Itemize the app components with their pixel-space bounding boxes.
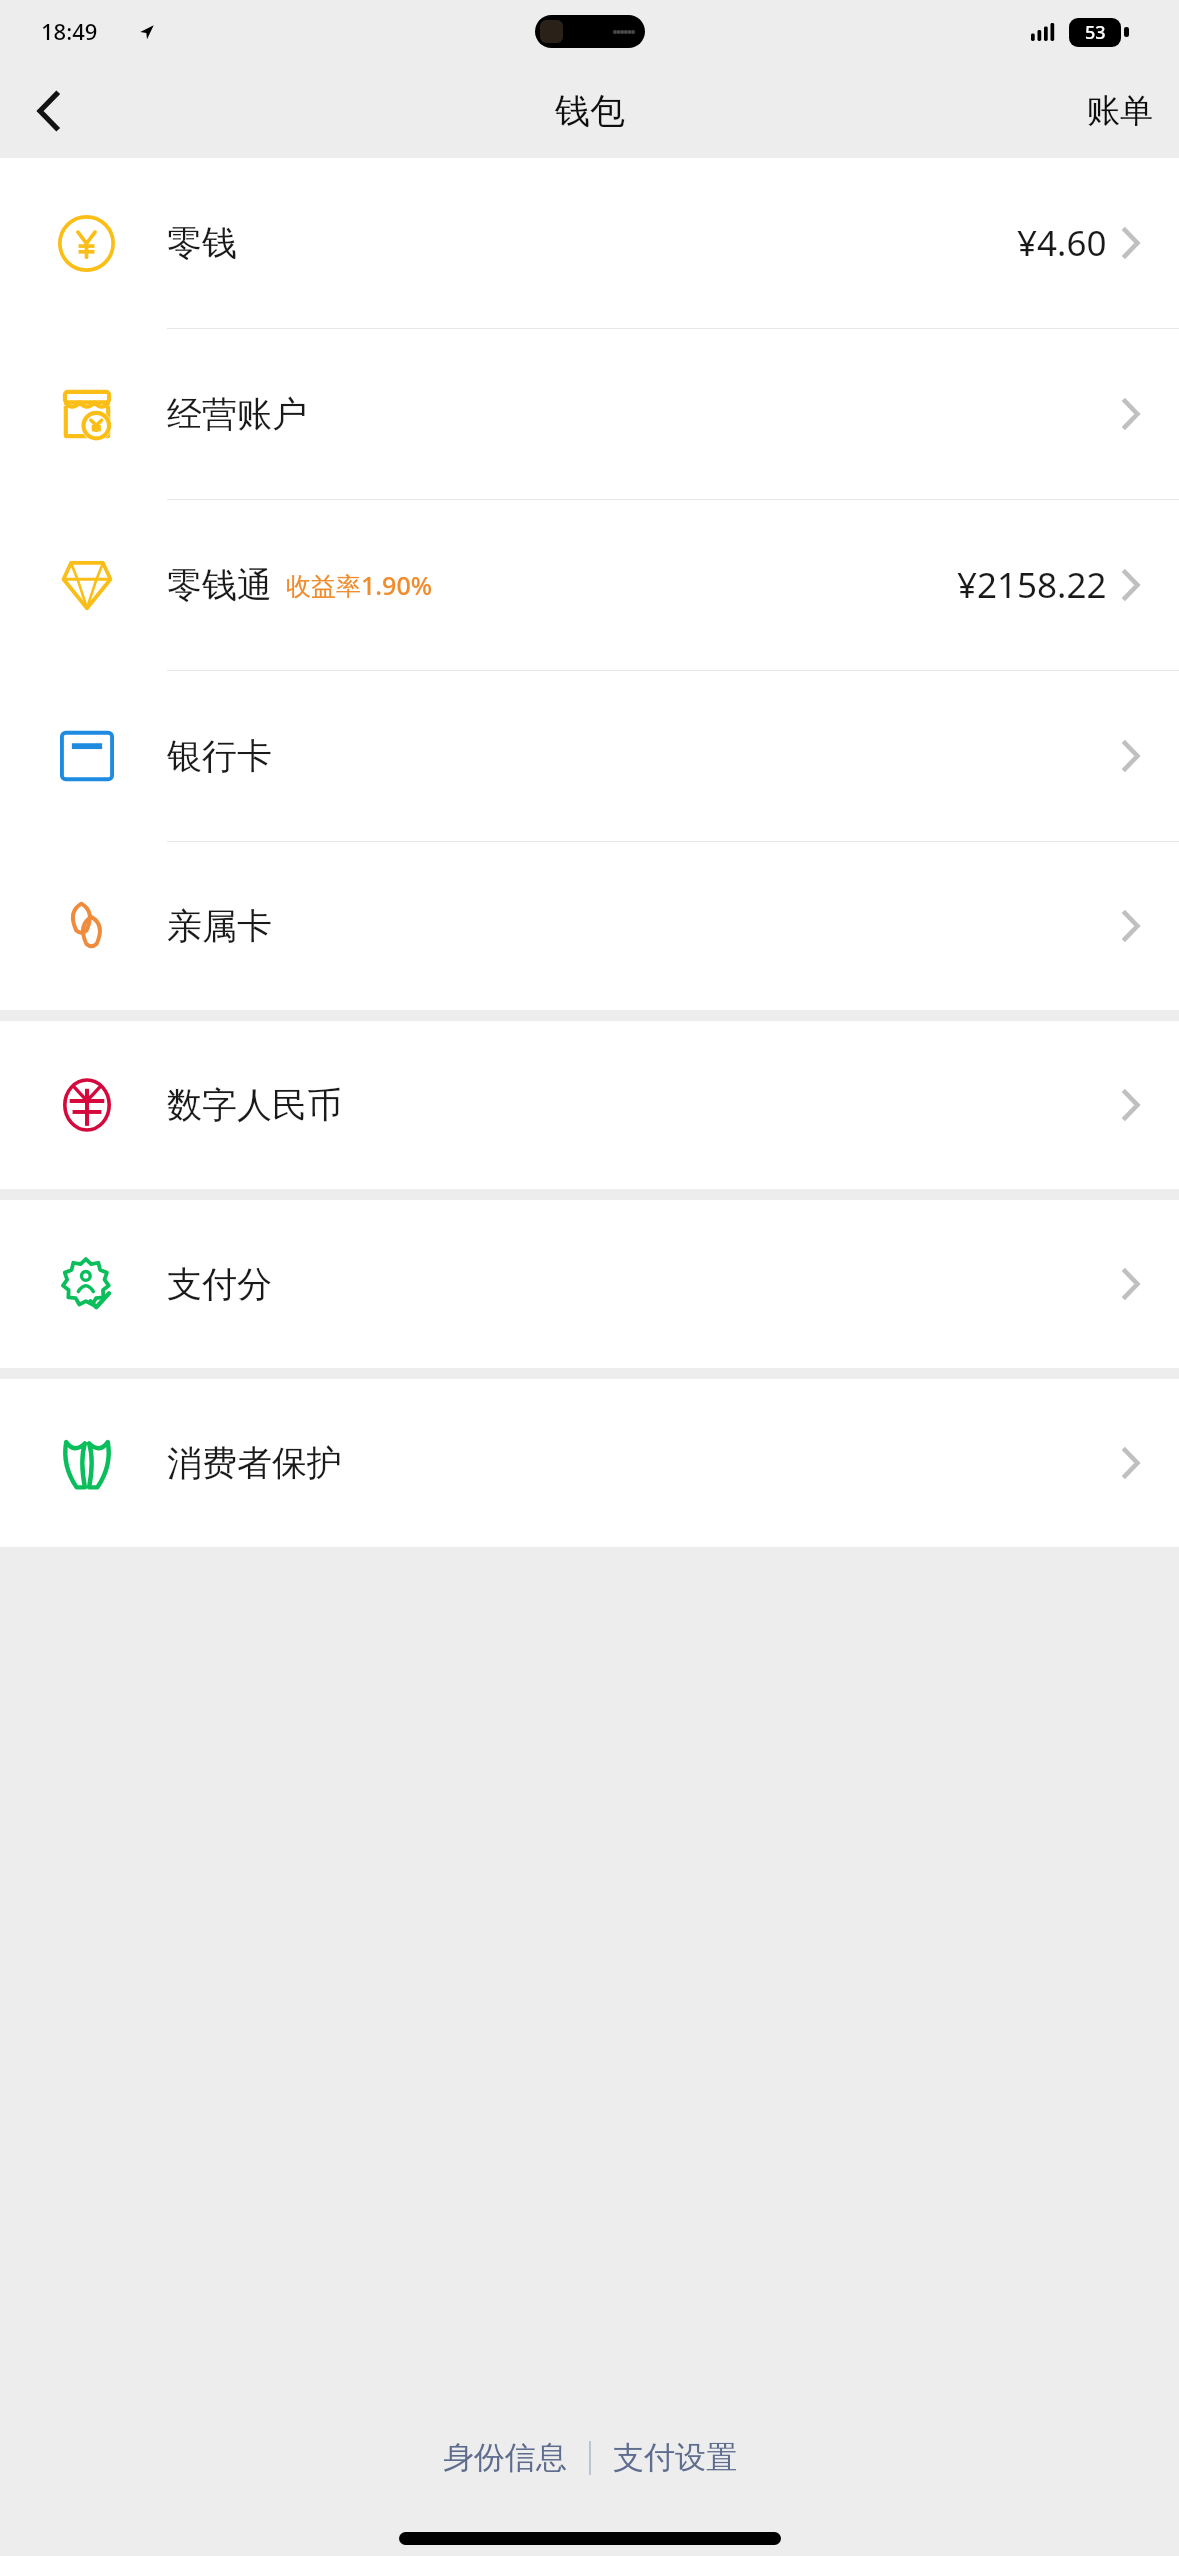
button[interactable]: 账单 — [1061, 64, 1179, 158]
staticText: 数字人民币 — [167, 1083, 342, 1127]
button[interactable]: 经营账户 — [0, 329, 1179, 500]
staticText: 零钱通 — [167, 563, 272, 607]
button[interactable]: Back — [0, 64, 96, 158]
button[interactable]: 数字人民币 — [0, 1021, 1179, 1189]
staticText: 消费者保护 — [167, 1441, 342, 1485]
button[interactable]: 支付设置 — [603, 2428, 747, 2487]
staticText: 支付设置 — [613, 2438, 737, 2477]
staticText: 收益率1.90% — [286, 568, 433, 602]
staticText: 亲属卡 — [167, 904, 272, 948]
staticText: 53 — [1085, 20, 1106, 45]
staticText: 钱包 — [555, 89, 625, 133]
staticText: 经营账户 — [167, 392, 307, 436]
staticText: 银行卡 — [167, 734, 272, 778]
button[interactable]: 零钱通 — [0, 500, 1179, 671]
staticText: ¥4.60 — [1017, 219, 1107, 267]
button[interactable]: 亲属卡 — [0, 842, 1179, 1010]
button[interactable]: 零钱 — [0, 158, 1179, 329]
staticText: 18:49 — [41, 16, 98, 46]
staticText: 账单 — [1087, 90, 1153, 132]
staticText: 支付分 — [167, 1262, 272, 1306]
staticText: ¥2158.22 — [957, 561, 1107, 609]
button[interactable]: 支付分 — [0, 1200, 1179, 1368]
staticText: 零钱 — [167, 221, 237, 265]
staticText: 身份信息 — [443, 2438, 567, 2477]
button[interactable]: 消费者保护 — [0, 1379, 1179, 1547]
button[interactable]: 银行卡 — [0, 671, 1179, 842]
button[interactable]: 身份信息 — [433, 2428, 577, 2487]
